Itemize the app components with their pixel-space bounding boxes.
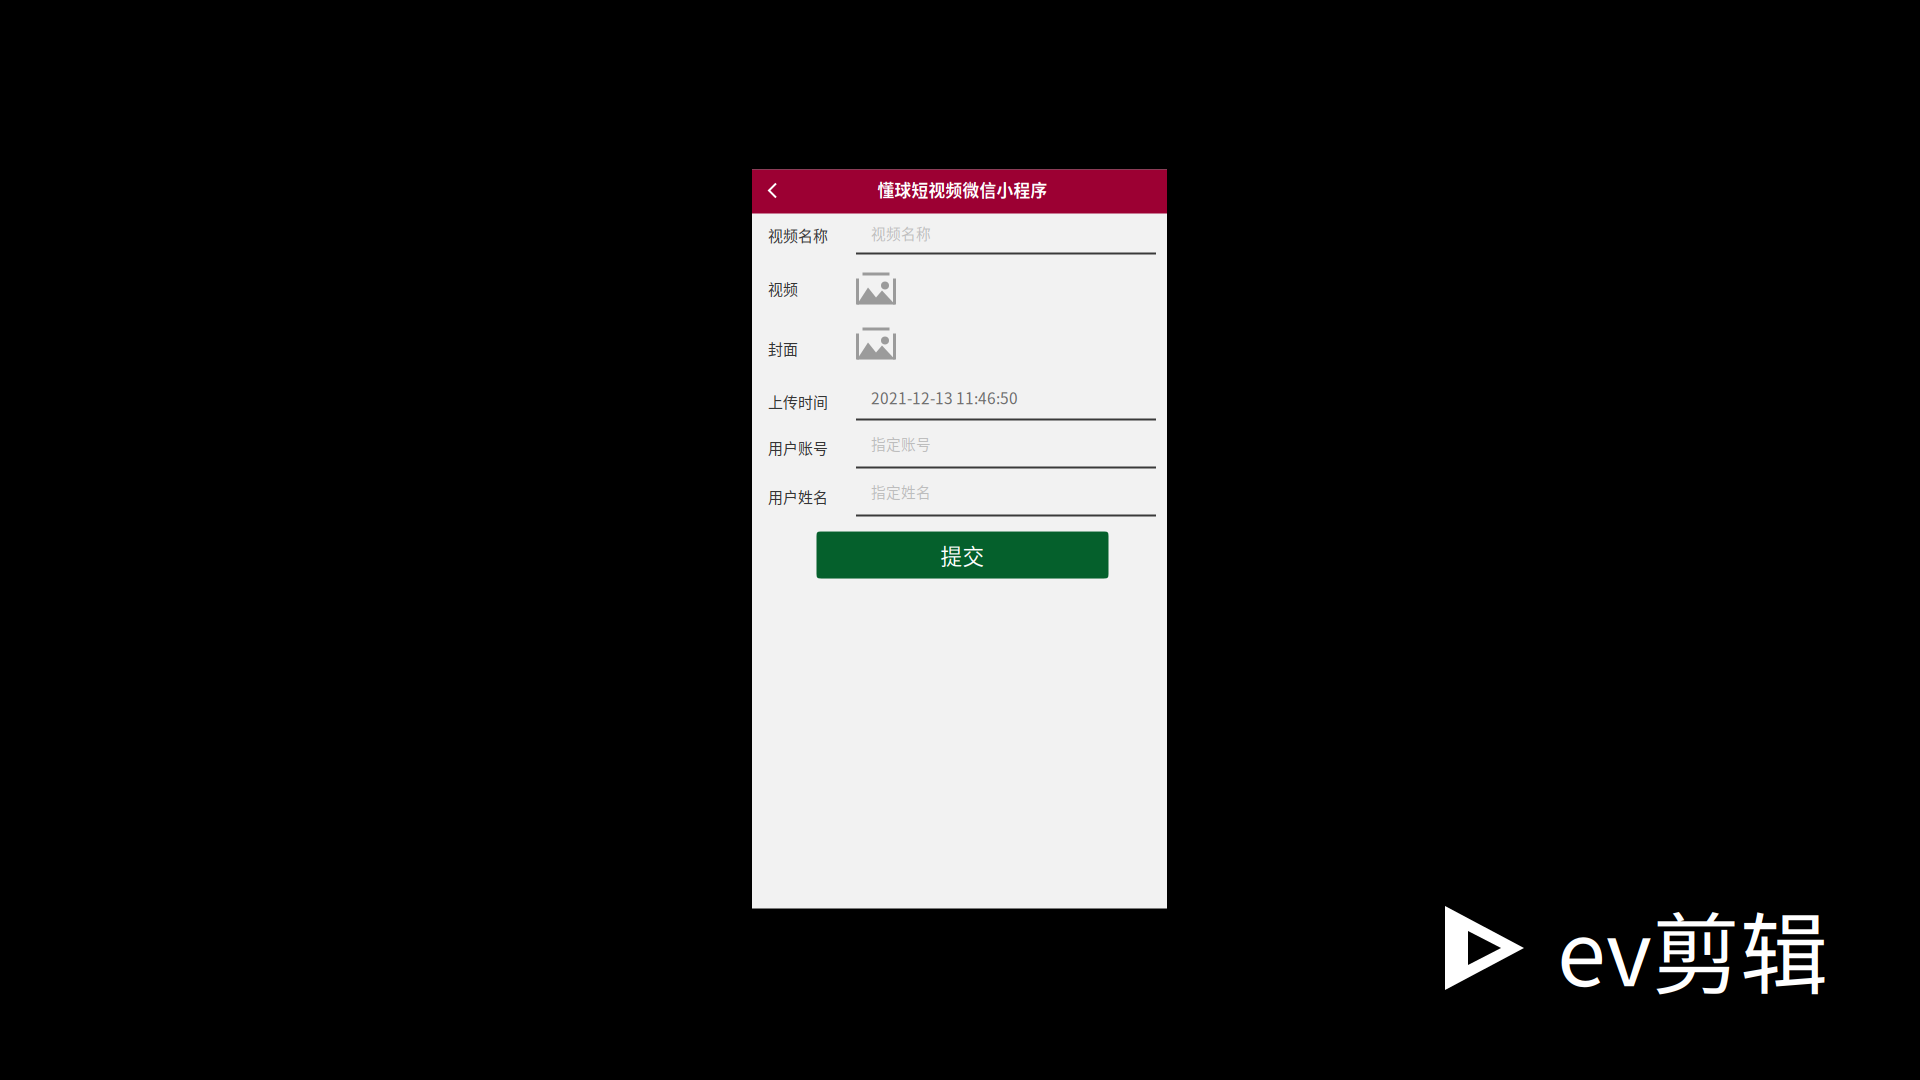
button[interactable]: 选择封面 xyxy=(856,327,896,359)
staticText: 封面 xyxy=(768,338,798,359)
button[interactable]: 提交 xyxy=(816,531,1108,578)
button[interactable]: 选择视频 xyxy=(856,272,896,304)
staticText: 提交 xyxy=(940,539,984,571)
staticText: 2021-12-13 11:46:50 xyxy=(871,386,1018,409)
staticText: 指定姓名 xyxy=(871,481,931,502)
staticText: 懂球短视频微信小程序 xyxy=(877,177,1047,201)
button[interactable]: 指定账号 xyxy=(871,427,1156,459)
staticText: ev剪辑 xyxy=(1557,884,1828,1012)
staticText: 视频名称 xyxy=(871,222,931,244)
button[interactable]: 返回 xyxy=(752,169,790,213)
staticText: 上传时间 xyxy=(768,391,828,412)
staticText: 用户姓名 xyxy=(768,486,828,507)
staticText: 视频名称 xyxy=(768,224,828,246)
button[interactable]: 指定姓名 xyxy=(871,475,1156,507)
staticText: 视频 xyxy=(768,278,798,299)
staticText: 用户账号 xyxy=(768,437,828,458)
staticText: 指定账号 xyxy=(871,433,931,454)
button[interactable]: 视频名称 xyxy=(871,218,1156,248)
